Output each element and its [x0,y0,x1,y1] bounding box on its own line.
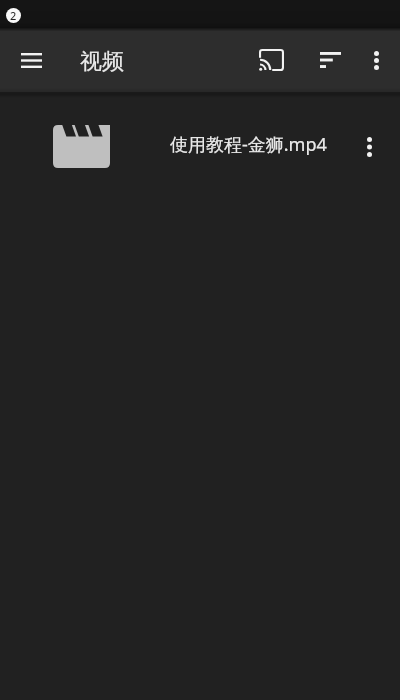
staticText: 2 [10,8,17,23]
button[interactable]: More options for 使用教程-金狮.mp4 [347,124,392,170]
button[interactable]: Sort [308,38,353,82]
staticText: 使用教程-金狮.mp4 [170,132,327,157]
staticText: 视频 [80,48,124,76]
button[interactable]: 使用教程-金狮.mp4 [0,98,400,184]
button[interactable]: Open navigation menu [9,38,54,82]
button[interactable]: More options [354,38,399,82]
button[interactable]: Cast to device [249,38,293,82]
